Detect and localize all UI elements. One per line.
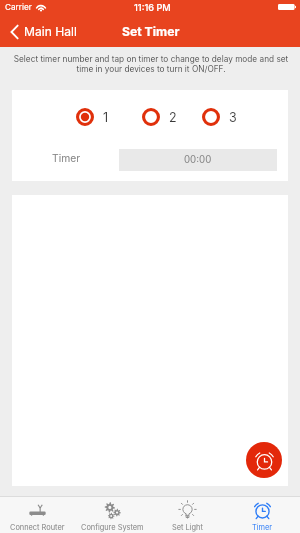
staticText: 00:00	[184, 154, 212, 166]
button[interactable]: 00:00	[119, 149, 277, 171]
button[interactable]: Configure System	[75, 497, 150, 533]
button[interactable]: Main Hall	[0, 18, 85, 45]
staticText: Main Hall	[24, 24, 77, 39]
staticText: Select timer number and tap on timer to …	[13, 54, 289, 74]
staticText: Configure System	[81, 523, 144, 532]
staticText: 1	[103, 110, 109, 125]
staticText: Connect Router	[10, 523, 65, 532]
staticText: Set Timer	[122, 24, 180, 39]
staticText: Carrier	[5, 2, 32, 12]
button[interactable]: 3	[200, 106, 239, 128]
staticText: 11:16 PM	[134, 2, 171, 13]
staticText: 2	[169, 110, 177, 125]
staticText: Timer	[52, 152, 81, 164]
staticText: 3	[229, 110, 237, 125]
staticText: Set Light	[172, 523, 203, 532]
button[interactable]: 2	[140, 106, 179, 128]
button[interactable]: 1	[74, 106, 111, 128]
button[interactable]: Set alarm timer	[246, 442, 282, 478]
button[interactable]: Connect Router	[0, 497, 75, 533]
staticText: Timer	[252, 523, 273, 532]
button[interactable]: Timer	[225, 497, 300, 533]
button[interactable]: Set Light	[150, 497, 225, 533]
